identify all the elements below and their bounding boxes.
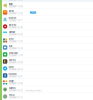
staticText: Netflix [8, 10, 13, 12]
staticText: Camera [8, 59, 15, 61]
button[interactable]: Pinterest [0, 23, 93, 30]
staticText: 2022.06.05 16:00 [8, 83, 22, 85]
staticText: 2022.06.04 21:13 [8, 97, 22, 99]
staticText: WhatsApp [8, 52, 17, 54]
staticText: Mail [8, 45, 11, 47]
staticText: Analytics [8, 87, 15, 89]
button[interactable]: Mail [0, 44, 93, 51]
button[interactable]: Skype [0, 65, 93, 72]
staticText: Office [8, 38, 13, 40]
staticText: Weather [8, 17, 16, 19]
button[interactable]: Analytics [0, 86, 93, 93]
button[interactable]: Calendar [0, 30, 93, 37]
staticText: 2022.06.05 10:22 · the long one here [8, 90, 41, 92]
button[interactable]: Netflix [0, 9, 93, 16]
staticText: 2022.06.05 23:09 [8, 62, 22, 64]
staticText: 2022.06.06 11:47 [8, 55, 22, 57]
staticText: 2022.06.07 14:05 [8, 6, 22, 8]
button[interactable]: Camera [0, 58, 93, 65]
staticText: 2022.06.06 15:18 [8, 48, 22, 50]
staticText: Skype [8, 66, 13, 68]
staticText: 2022.06.06 19:02 [8, 34, 22, 36]
button[interactable]: Photos [0, 93, 93, 100]
button[interactable]: Google [0, 79, 93, 86]
button[interactable]: Office [0, 37, 93, 44]
staticText: 2022.06.05 18:31 [8, 76, 22, 78]
staticText: 2022.06.07 15:20 [8, 0, 22, 1]
staticText: 2022.06.05 20:54 [8, 69, 22, 71]
staticText: OPEN [31, 11, 35, 13]
staticText: Google [8, 80, 13, 82]
staticText: 2022.06.07 13:32 [8, 13, 22, 15]
staticText: 2022.06.06 22:40 [8, 27, 22, 29]
button[interactable]: Facebook [0, 72, 93, 79]
staticText: 2022.06.06 17:25 [8, 41, 22, 43]
staticText: Facebook [8, 73, 16, 75]
staticText: Pinterest [8, 24, 16, 26]
staticText: Photos [8, 94, 14, 96]
button[interactable]: Weather [0, 16, 93, 23]
staticText: 2022.06.07 12:11 [8, 20, 22, 22]
button[interactable]: WhatsApp [0, 51, 93, 58]
staticText: Calendar [8, 31, 15, 33]
button[interactable]: Ringle [0, 2, 93, 9]
staticText: Ringle [8, 3, 12, 5]
